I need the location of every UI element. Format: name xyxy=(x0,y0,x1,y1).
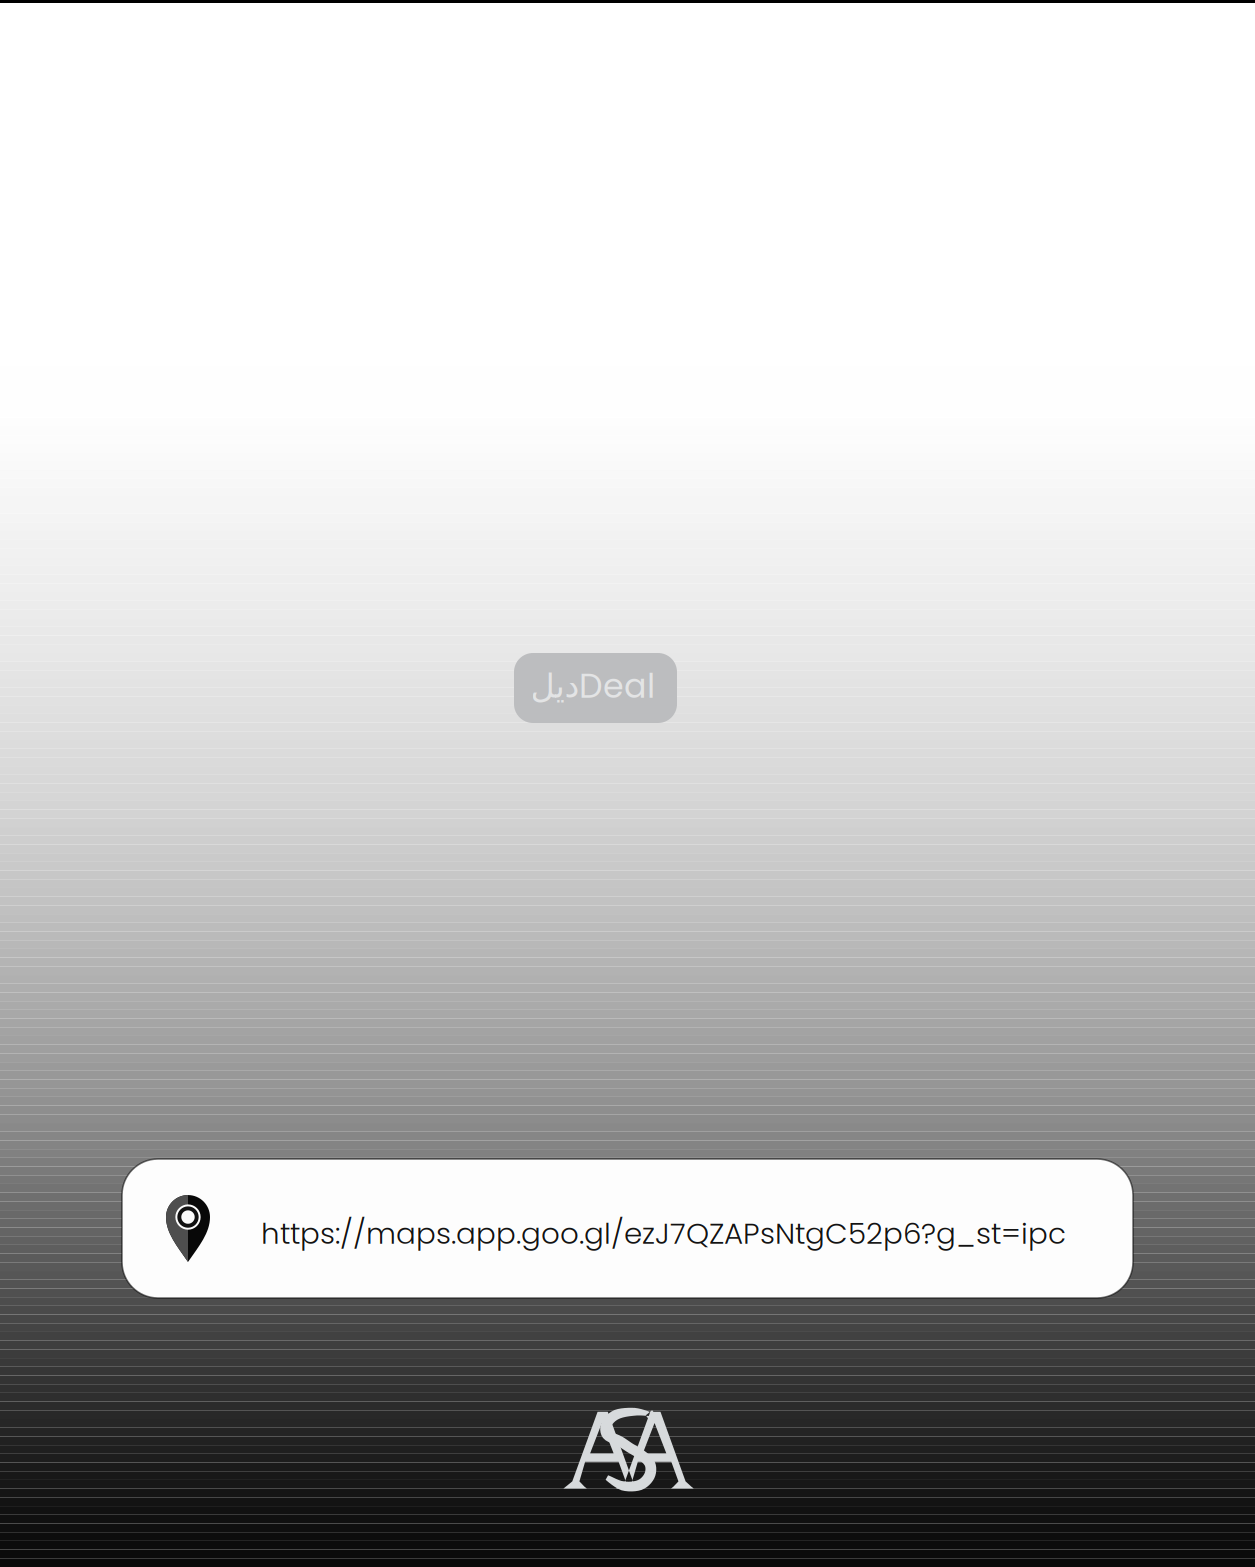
staticText: https://maps.app.goo.gl/ezJ7QZAPsNtgC52p… xyxy=(261,1213,1066,1254)
button[interactable]: https://maps.app.goo.gl/ezJ7QZAPsNtgC52p… xyxy=(122,1159,1133,1298)
staticText: ديل xyxy=(530,667,579,705)
staticText: Deal xyxy=(579,663,655,709)
